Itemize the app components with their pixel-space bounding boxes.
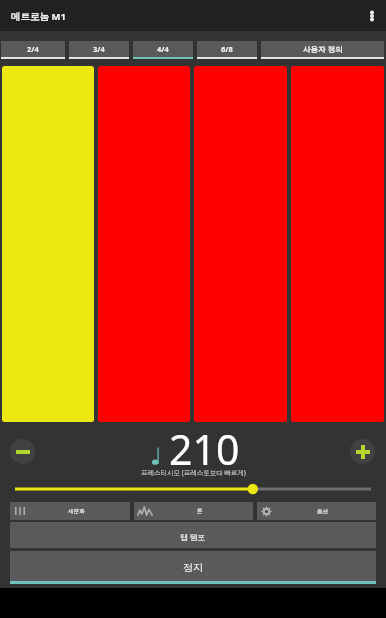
staticText: 210 <box>169 421 240 465</box>
staticText: 메트로놈 M1 <box>11 10 66 23</box>
button[interactable]: 탭 템포 <box>10 522 376 548</box>
staticText: 4/4 <box>157 44 169 54</box>
staticText: 프레스티시모 (프레스토보다 빠르게) <box>141 468 246 477</box>
staticText: 2/4 <box>27 44 39 54</box>
staticText: 톤 <box>197 508 203 515</box>
button[interactable]: Decrease tempo <box>10 439 35 464</box>
button[interactable]: 사용자 정의 <box>261 41 384 59</box>
button[interactable]: Increase tempo <box>350 439 375 464</box>
staticText: 6/8 <box>221 44 233 54</box>
button[interactable]: More options <box>358 0 386 31</box>
button[interactable]: 4/4 <box>133 41 193 59</box>
button[interactable]: 세분화 <box>10 502 130 520</box>
staticText: 정지 <box>183 561 203 574</box>
staticText: 3/4 <box>93 44 105 54</box>
button[interactable]: 옵션 <box>257 502 376 520</box>
button[interactable]: 3/4 <box>69 41 129 59</box>
staticText: 사용자 정의 <box>303 44 343 54</box>
button[interactable]: 톤 <box>134 502 253 520</box>
button[interactable]: 6/8 <box>197 41 257 59</box>
staticText: 탭 템포 <box>180 532 206 543</box>
staticText: 세분화 <box>68 508 85 515</box>
button[interactable]: 정지 <box>10 551 376 584</box>
button[interactable]: 2/4 <box>1 41 65 59</box>
staticText: 옵션 <box>317 508 329 515</box>
